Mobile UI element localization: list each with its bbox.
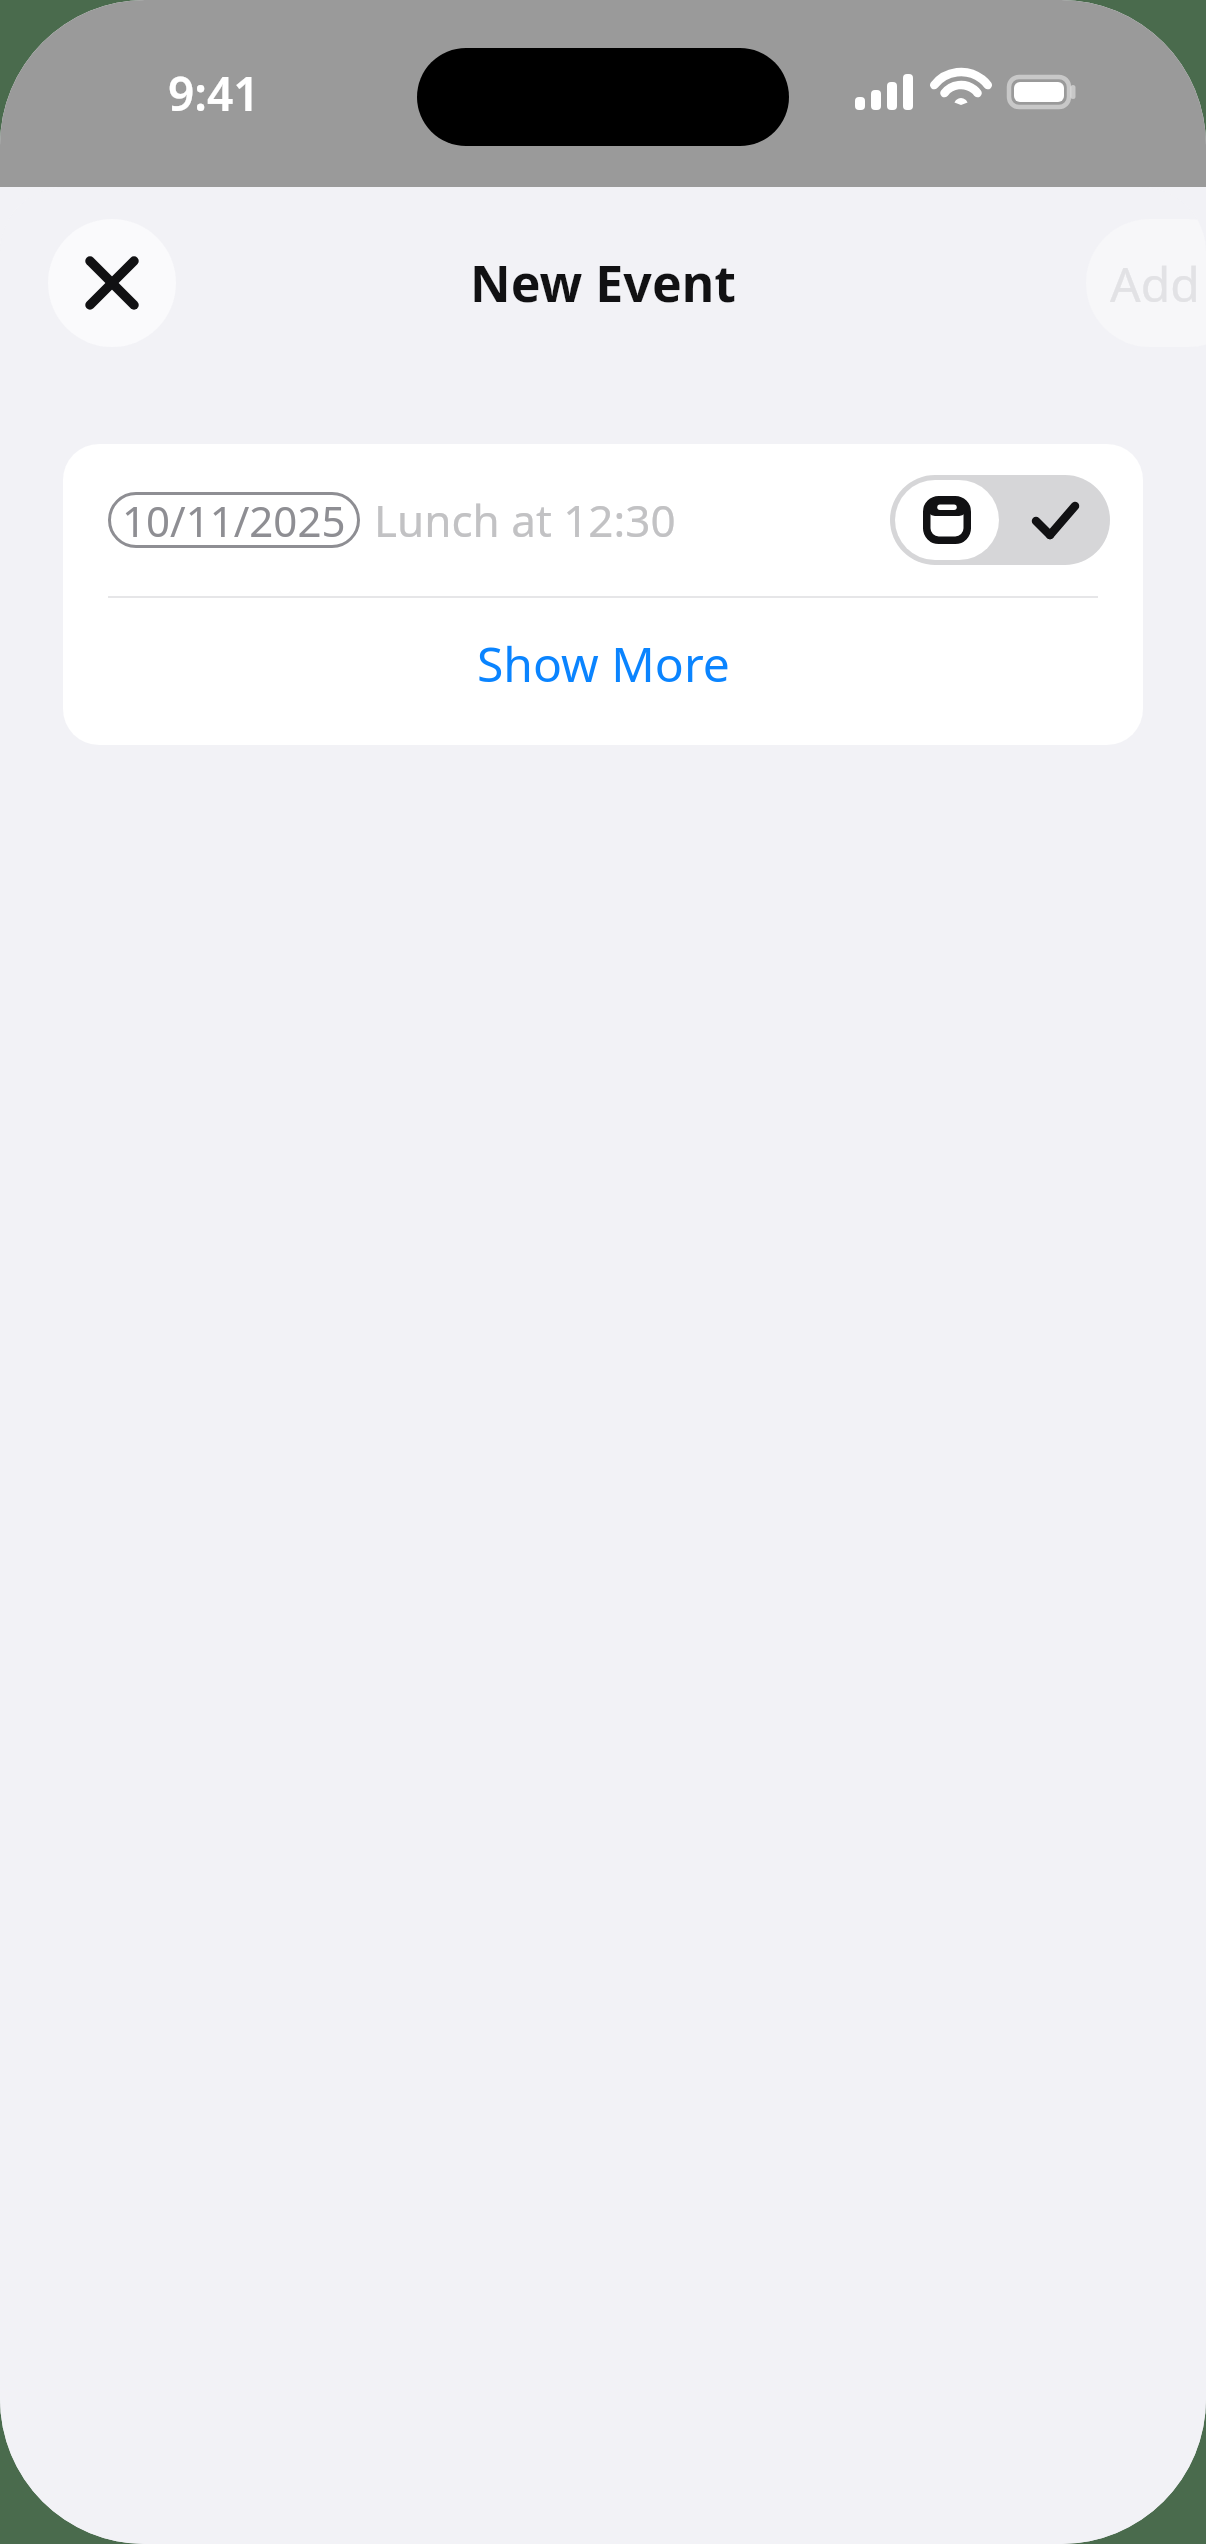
staticText: Lunch at 12:30	[374, 490, 676, 550]
button[interactable]: Confirm	[1000, 475, 1110, 565]
staticText: Add	[1110, 251, 1200, 316]
button[interactable]: Show More	[63, 598, 1143, 745]
staticText: Show More	[477, 631, 730, 696]
staticText: 9:41	[168, 62, 260, 125]
button[interactable]: 10/11/2025	[122, 492, 346, 548]
staticText: 10/11/2025	[122, 492, 346, 548]
staticText: New Event	[470, 249, 736, 317]
button[interactable]: Close	[48, 219, 176, 347]
button[interactable]: Add	[1086, 219, 1206, 347]
button[interactable]: Calendar	[895, 480, 999, 560]
